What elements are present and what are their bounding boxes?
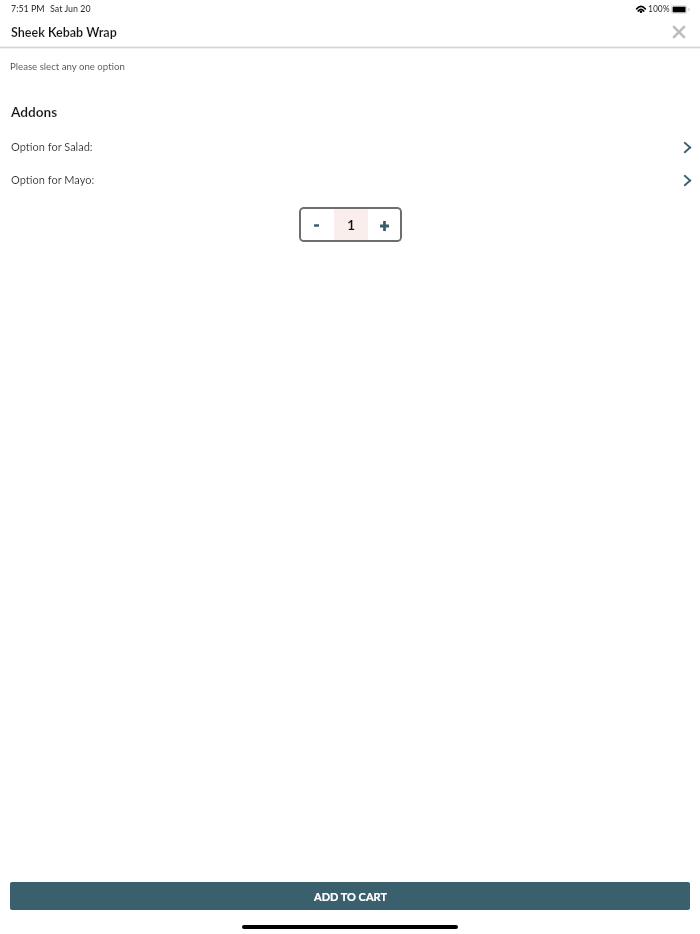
staticText: Option for Salad:	[11, 140, 93, 153]
button[interactable]: ADD TO CART	[10, 882, 690, 910]
staticText: 7:51 PM	[11, 3, 45, 14]
button[interactable]: Close	[666, 19, 692, 45]
staticText: Sat Jun 20	[50, 3, 91, 14]
staticText: 100%	[648, 4, 670, 14]
staticText: Please slect any one option	[10, 60, 125, 72]
staticText: Addons	[11, 104, 58, 120]
staticText: Sheek Kebab Wrap	[11, 25, 117, 40]
button[interactable]: Decrease quantity	[299, 207, 334, 242]
button[interactable]: Option for Mayo:	[0, 167, 700, 191]
staticText: 1	[347, 216, 356, 233]
staticText: Option for Mayo:	[11, 173, 95, 186]
staticText: ADD TO CART	[314, 890, 387, 903]
button[interactable]: Option for Salad:	[0, 134, 700, 158]
button[interactable]: Increase quantity	[368, 207, 402, 242]
